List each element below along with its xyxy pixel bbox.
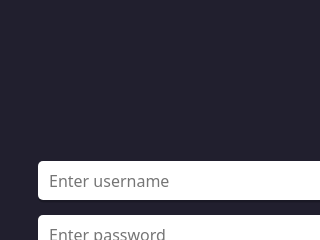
staticText: Enter username bbox=[49, 170, 170, 192]
staticText: Enter password bbox=[49, 224, 166, 240]
button[interactable]: Enter password bbox=[38, 215, 320, 240]
button[interactable]: Enter username bbox=[38, 161, 320, 200]
